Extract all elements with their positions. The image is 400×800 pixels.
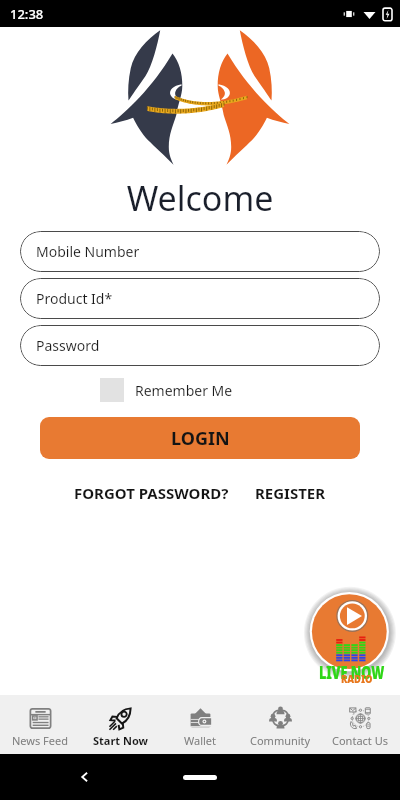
button[interactable]: News Feed: [0, 695, 80, 748]
button[interactable]: Password: [20, 325, 380, 366]
staticText: FORGOT PASSWORD?: [74, 483, 229, 503]
staticText: Contact Us: [332, 733, 388, 748]
staticText: News Feed: [12, 733, 69, 748]
button[interactable]: Community: [240, 695, 320, 748]
staticText: LOGIN: [171, 426, 230, 451]
button[interactable]: Wallet: [160, 695, 240, 748]
button[interactable]: Live Now Radio: [300, 560, 400, 720]
button[interactable]: FORGOT PASSWORD?: [72, 479, 231, 507]
button[interactable]: REGISTER: [253, 479, 328, 507]
button[interactable]: Mobile Number: [20, 231, 380, 272]
staticText: Start Now: [93, 733, 148, 748]
staticText: Community: [250, 733, 311, 748]
staticText: Password: [36, 336, 100, 355]
staticText: Welcome: [0, 175, 400, 221]
button[interactable]: Contact Us: [320, 695, 400, 748]
other: Home: [183, 775, 217, 780]
staticText: Wallet: [184, 733, 217, 748]
button[interactable]: Start Now: [80, 695, 160, 748]
button[interactable]: Product Id*: [20, 278, 380, 319]
other: Back: [78, 770, 92, 784]
button[interactable]: LOGIN: [40, 417, 360, 459]
staticText: REGISTER: [255, 483, 326, 503]
staticText: RADIO: [341, 671, 373, 686]
staticText: Product Id*: [36, 289, 113, 308]
staticText: Mobile Number: [36, 242, 140, 261]
staticText: LIVE NOW: [319, 661, 385, 684]
staticText: 12:38: [10, 5, 44, 23]
staticText: Remember Me: [135, 381, 233, 400]
